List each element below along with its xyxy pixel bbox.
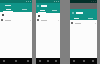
button[interactable] (36, 18, 60, 22)
button[interactable] (48, 8, 60, 13)
button[interactable] (70, 21, 97, 25)
button[interactable] (36, 8, 48, 13)
button[interactable] (83, 17, 97, 20)
button[interactable] (0, 18, 32, 22)
button[interactable] (0, 7, 16, 12)
button[interactable] (16, 7, 32, 12)
button[interactable] (70, 17, 83, 20)
